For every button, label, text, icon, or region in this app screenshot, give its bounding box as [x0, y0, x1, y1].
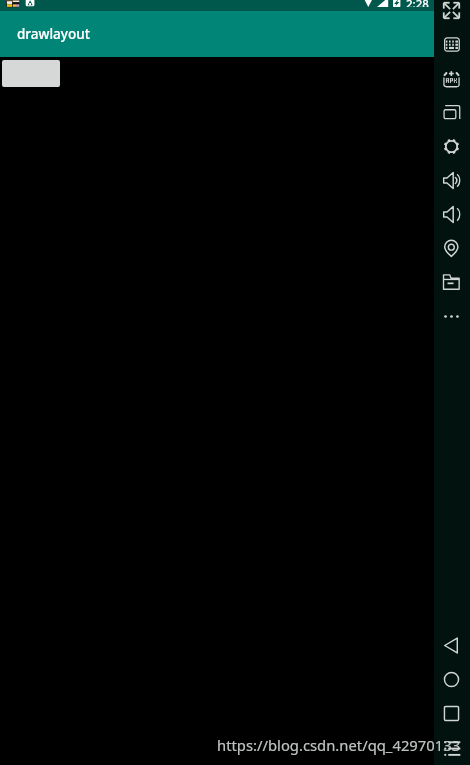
- button[interactable]: Volume down: [443, 206, 460, 223]
- button[interactable]: More: [443, 308, 460, 325]
- button[interactable]: Install APK: [443, 70, 460, 87]
- button[interactable]: Recents: [443, 705, 460, 722]
- button[interactable]: Folder: [443, 274, 460, 291]
- button[interactable]: [2, 60, 60, 87]
- button[interactable]: Volume up: [443, 172, 460, 189]
- button[interactable]: Menu: [444, 740, 461, 757]
- staticText: drawlayout: [17, 25, 90, 43]
- staticText: https://blog.csdn.net/qq_42970133: [217, 735, 461, 755]
- button[interactable]: Expand: [443, 2, 460, 19]
- button[interactable]: Screenshot: [443, 104, 460, 121]
- button[interactable]: Back: [443, 637, 460, 654]
- button[interactable]: Settings: [443, 138, 460, 155]
- button[interactable]: Location: [443, 240, 460, 257]
- staticText: 2:28: [406, 0, 429, 7]
- button[interactable]: Keyboard: [443, 36, 460, 53]
- button[interactable]: Home: [443, 671, 460, 688]
